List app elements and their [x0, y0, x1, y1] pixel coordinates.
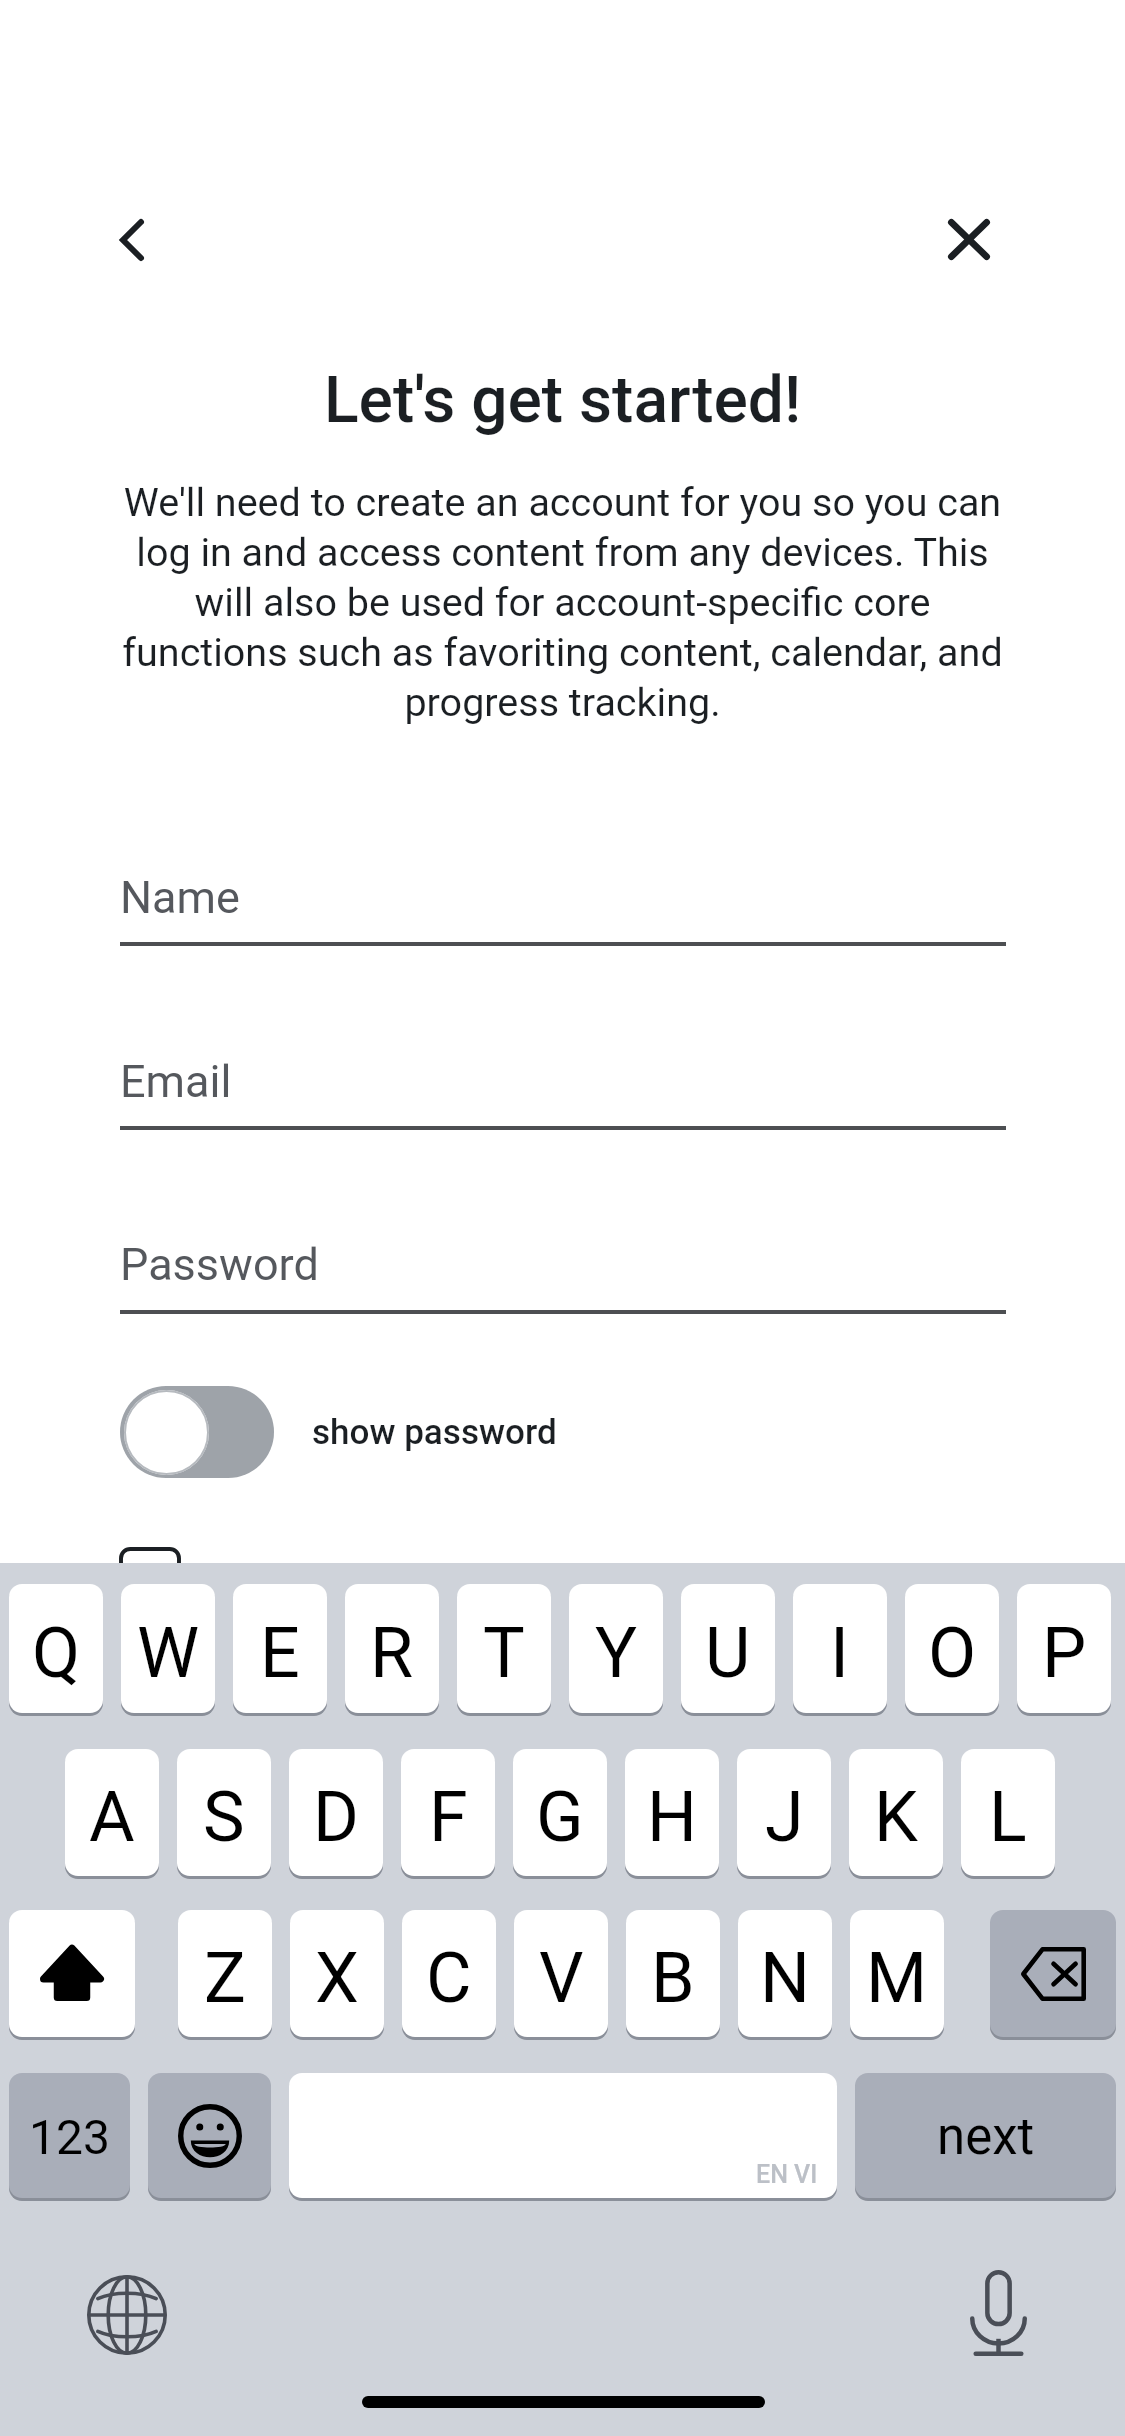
button[interactable]: 123 — [9, 2073, 130, 2198]
button[interactable]: V — [514, 1910, 608, 2037]
button[interactable]: W — [121, 1584, 215, 1713]
staticText: next — [937, 2107, 1035, 2167]
staticText: We'll need to create an account for you … — [115, 479, 1010, 725]
staticText: Y — [595, 1612, 638, 1694]
staticText: EN VI — [756, 2160, 818, 2189]
button[interactable]: Shift — [9, 1910, 135, 2037]
staticText: show password — [312, 1412, 557, 1453]
staticText: G — [536, 1776, 584, 1858]
staticText: I — [830, 1612, 850, 1694]
button[interactable]: show password — [120, 1380, 557, 1484]
staticText: A — [89, 1776, 135, 1858]
button[interactable]: F — [401, 1749, 495, 1876]
button[interactable]: M — [850, 1910, 944, 2037]
staticText: K — [874, 1776, 918, 1858]
button[interactable]: Backspace — [990, 1910, 1116, 2037]
staticText: W — [137, 1612, 200, 1694]
staticText: Email — [120, 1055, 232, 1108]
staticText: Z — [204, 1937, 246, 2019]
staticText: N — [760, 1937, 810, 2019]
button[interactable]: Voice input — [940, 2250, 1056, 2366]
button[interactable]: I — [793, 1584, 887, 1713]
button[interactable]: Space — [289, 2073, 837, 2198]
button[interactable]: D — [289, 1749, 383, 1876]
staticText: F — [429, 1776, 468, 1858]
button[interactable]: G — [513, 1749, 607, 1876]
staticText: U — [705, 1612, 751, 1694]
staticText: L — [989, 1776, 1027, 1858]
button[interactable]: S — [177, 1749, 271, 1876]
staticText: C — [426, 1937, 472, 2019]
button[interactable]: P — [1017, 1584, 1111, 1713]
button[interactable]: O — [905, 1584, 999, 1713]
staticText: Name — [120, 871, 240, 924]
staticText: 123 — [29, 2109, 110, 2165]
staticText: M — [866, 1937, 928, 2019]
button[interactable]: C — [402, 1910, 496, 2037]
staticText: B — [651, 1937, 695, 2019]
staticText: T — [483, 1612, 525, 1694]
staticText: J — [765, 1776, 804, 1858]
button[interactable]: Z — [178, 1910, 272, 2037]
staticText: Let's get started! — [0, 363, 1125, 438]
staticText: Password — [120, 1238, 319, 1291]
button[interactable]: A — [65, 1749, 159, 1876]
button[interactable]: Close — [909, 180, 1029, 300]
staticText: V — [539, 1937, 584, 2019]
button[interactable]: T — [457, 1584, 551, 1713]
staticText: X — [315, 1937, 359, 2019]
staticText: P — [1042, 1612, 1087, 1694]
button[interactable]: L — [961, 1749, 1055, 1876]
staticText: S — [203, 1776, 245, 1858]
button[interactable]: Q — [9, 1584, 103, 1713]
staticText: Q — [32, 1612, 81, 1694]
button[interactable]: next — [855, 2073, 1116, 2198]
button[interactable]: Y — [569, 1584, 663, 1713]
staticText: O — [928, 1612, 977, 1694]
button[interactable]: B — [626, 1910, 720, 2037]
button[interactable]: K — [849, 1749, 943, 1876]
button[interactable]: Change language — [67, 2255, 187, 2375]
button[interactable]: N — [738, 1910, 832, 2037]
button[interactable]: X — [290, 1910, 384, 2037]
staticText: H — [647, 1776, 697, 1858]
button[interactable]: Back — [72, 192, 192, 288]
button[interactable]: H — [625, 1749, 719, 1876]
button[interactable]: R — [345, 1584, 439, 1713]
staticText: D — [313, 1776, 359, 1858]
staticText: E — [260, 1612, 300, 1694]
button[interactable]: Emoji — [148, 2073, 271, 2198]
staticText: R — [370, 1612, 414, 1694]
button[interactable]: J — [737, 1749, 831, 1876]
button[interactable]: U — [681, 1584, 775, 1713]
button[interactable]: E — [233, 1584, 327, 1713]
